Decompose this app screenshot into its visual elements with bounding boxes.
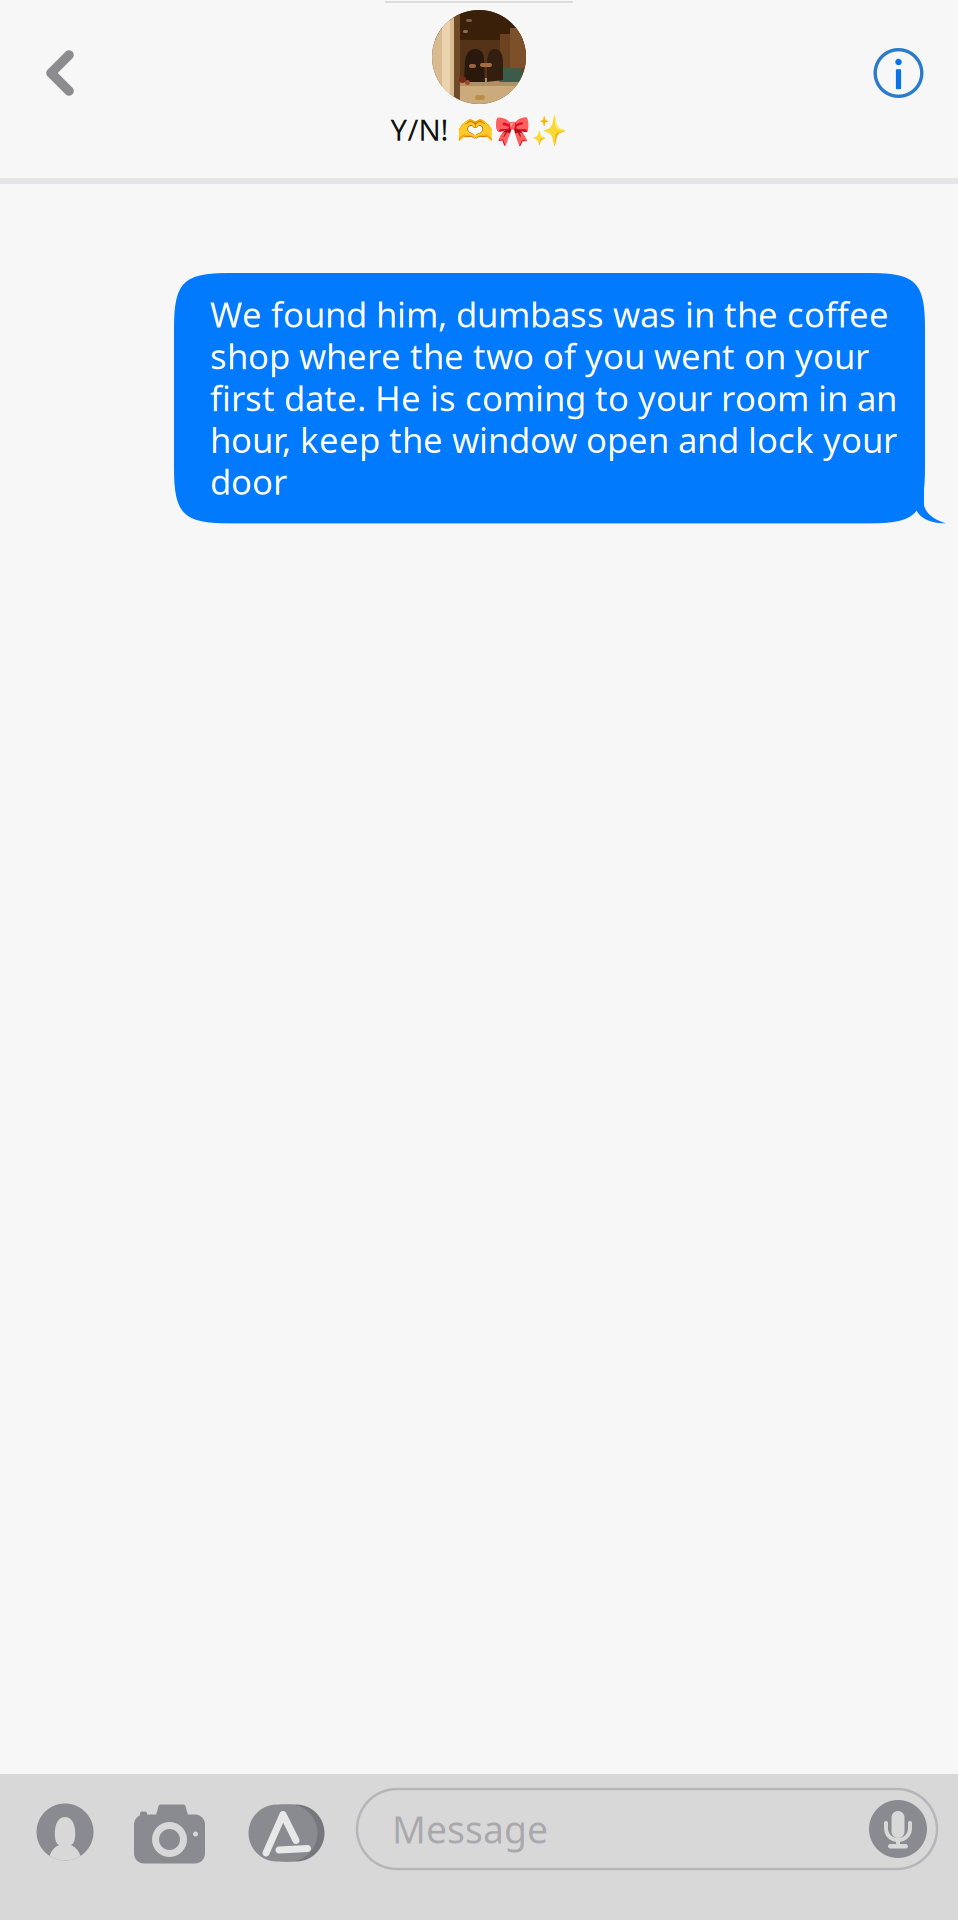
staticText: Message [392, 1804, 548, 1854]
button[interactable]: Apps [209, 1784, 357, 1874]
button[interactable]: Contacts [0, 1784, 130, 1874]
button[interactable]: Camera [130, 1784, 209, 1874]
staticText: Y/N! 🫶🎀✨ [390, 110, 567, 149]
button[interactable]: Message field [357, 1789, 937, 1869]
staticText: We found him, dumbass was in the coffee … [210, 291, 897, 504]
button[interactable]: Details [839, 3, 958, 143]
button[interactable]: Back [0, 3, 120, 143]
